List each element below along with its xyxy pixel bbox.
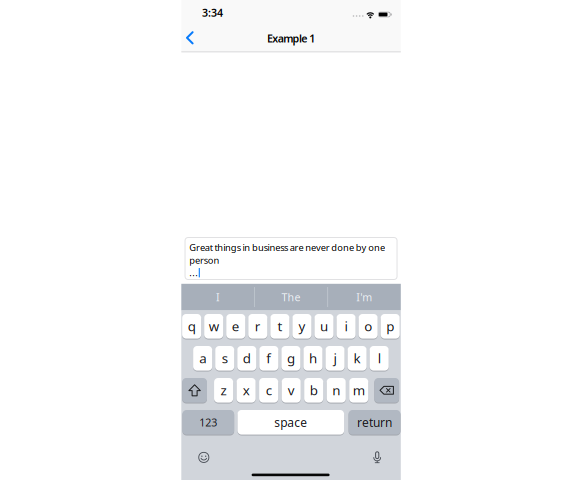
- button[interactable]: r: [248, 313, 267, 339]
- button[interactable]: Great things in business are never done …: [185, 237, 398, 280]
- button[interactable]: s: [215, 345, 234, 371]
- staticText: h: [309, 349, 317, 367]
- button[interactable]: j: [325, 345, 345, 371]
- staticText: The: [282, 290, 301, 304]
- staticText: v: [288, 381, 295, 399]
- button[interactable]: The: [255, 284, 327, 310]
- button[interactable]: p: [381, 313, 400, 339]
- button[interactable]: I'm: [329, 284, 400, 310]
- staticText: 123: [199, 415, 217, 429]
- staticText: return: [357, 414, 392, 430]
- button[interactable]: Shift: [182, 377, 207, 403]
- button[interactable]: y: [292, 313, 311, 339]
- button[interactable]: x: [237, 377, 256, 403]
- button[interactable]: f: [259, 345, 278, 371]
- button[interactable]: Emoji: [198, 452, 209, 463]
- staticText: k: [354, 349, 361, 367]
- button[interactable]: return: [349, 409, 400, 435]
- staticText: e: [232, 317, 240, 335]
- button[interactable]: I: [182, 284, 253, 310]
- staticText: y: [298, 317, 305, 335]
- button[interactable]: Delete: [374, 377, 399, 403]
- button[interactable]: o: [359, 313, 378, 339]
- staticText: p: [386, 317, 394, 335]
- staticText: z: [221, 381, 227, 399]
- button[interactable]: w: [204, 313, 223, 339]
- staticText: o: [364, 317, 372, 335]
- staticText: x: [243, 381, 250, 399]
- button[interactable]: c: [259, 377, 278, 403]
- staticText: d: [243, 349, 251, 367]
- staticText: i: [345, 317, 348, 335]
- staticText: Great things in business are never done …: [189, 241, 385, 254]
- button[interactable]: Back: [183, 31, 197, 45]
- staticText: c: [266, 381, 272, 399]
- button[interactable]: q: [182, 313, 201, 339]
- button[interactable]: l: [370, 345, 389, 371]
- staticText: a: [199, 349, 206, 367]
- staticText: space: [274, 414, 307, 430]
- button[interactable]: t: [270, 313, 289, 339]
- staticText: w: [209, 317, 219, 335]
- staticText: I: [216, 290, 220, 304]
- button[interactable]: b: [304, 377, 323, 403]
- staticText: t: [277, 317, 282, 335]
- button[interactable]: v: [282, 377, 301, 403]
- staticText: ...: [189, 266, 198, 279]
- staticText: person: [189, 254, 219, 266]
- staticText: f: [266, 349, 271, 367]
- button[interactable]: d: [237, 345, 256, 371]
- staticText: b: [310, 381, 318, 399]
- staticText: s: [222, 349, 228, 367]
- staticText: u: [320, 317, 328, 335]
- staticText: n: [332, 381, 340, 399]
- button[interactable]: n: [327, 377, 346, 403]
- staticText: g: [287, 349, 295, 367]
- button[interactable]: e: [226, 313, 245, 339]
- staticText: j: [333, 349, 336, 367]
- staticText: q: [188, 317, 196, 335]
- button[interactable]: k: [348, 345, 367, 371]
- button[interactable]: g: [281, 345, 300, 371]
- staticText: Example 1: [267, 31, 315, 45]
- button[interactable]: Dictate: [372, 451, 383, 463]
- button[interactable]: 123: [182, 409, 234, 435]
- button[interactable]: m: [349, 377, 368, 403]
- staticText: m: [353, 381, 365, 399]
- button[interactable]: a: [193, 345, 212, 371]
- button[interactable]: h: [303, 345, 322, 371]
- staticText: r: [255, 317, 261, 335]
- staticText: 3:34: [202, 5, 223, 20]
- button[interactable]: space: [237, 409, 344, 435]
- button[interactable]: i: [336, 313, 356, 339]
- button[interactable]: u: [314, 313, 334, 339]
- button[interactable]: z: [214, 377, 233, 403]
- staticText: l: [378, 349, 381, 367]
- staticText: I'm: [356, 290, 372, 304]
